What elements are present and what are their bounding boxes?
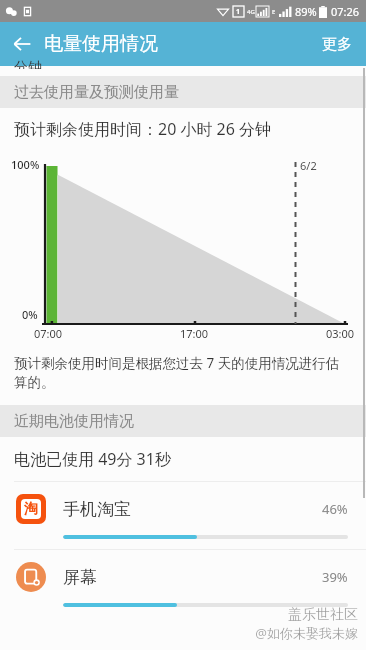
staticText: 1 <box>236 7 241 17</box>
staticText: 过去使用量及预测使用量 <box>14 83 179 102</box>
staticText: @如你未娶我未嫁 <box>255 624 358 642</box>
staticText: 4G <box>247 8 255 16</box>
staticText: 03:00 <box>326 326 355 341</box>
staticText: 更多 <box>322 35 352 54</box>
staticText: 07:26 <box>331 4 360 19</box>
staticText: 电池已使用 49分 31秒 <box>14 448 171 470</box>
staticText: 盖乐世社区 <box>288 606 358 624</box>
staticText: 预计剩余使用时间：20 小时 26 分钟 <box>14 118 272 140</box>
staticText: 39% <box>322 568 348 586</box>
staticText: E <box>272 8 276 16</box>
staticText: 近期电池使用情况 <box>14 412 134 431</box>
button[interactable]: 更多 <box>308 25 366 64</box>
staticText: 07:00 <box>34 326 63 341</box>
staticText: 电量使用情况 <box>44 32 158 56</box>
staticText: 100% <box>11 157 40 172</box>
staticText: 手机淘宝 <box>63 499 322 520</box>
button[interactable]: 淘 <box>0 482 366 549</box>
staticText: 分钟 <box>14 59 42 69</box>
button[interactable]: Back <box>0 22 44 66</box>
button[interactable]: 屏幕 <box>0 550 366 617</box>
staticText: 屏幕 <box>63 567 322 588</box>
staticText: 17:00 <box>180 326 209 341</box>
staticText: 0% <box>22 307 38 322</box>
staticText: 预计剩余使用时间是根据您过去 7 天的使用情况进行估算的。 <box>14 354 346 391</box>
staticText: 89% <box>295 4 317 19</box>
staticText: 46% <box>322 500 348 518</box>
staticText: 淘 <box>24 500 38 518</box>
staticText: 6/2 <box>300 158 317 173</box>
